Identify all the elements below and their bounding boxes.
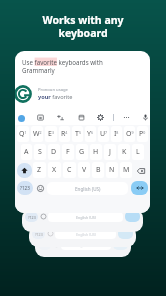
staticText: C xyxy=(67,165,72,175)
button[interactable]: More options xyxy=(121,112,132,123)
button[interactable]: K xyxy=(118,144,130,160)
staticText: J xyxy=(109,147,111,157)
staticText: K xyxy=(122,147,127,157)
button[interactable]: U7 xyxy=(98,126,109,142)
button[interactable]: F xyxy=(62,144,74,160)
staticText: W2 xyxy=(33,129,42,139)
staticText: English (US) xyxy=(76,215,96,220)
button[interactable]: R4 xyxy=(59,126,70,142)
staticText: A xyxy=(24,147,29,157)
button[interactable]: H xyxy=(90,144,102,160)
button[interactable]: Pronoun usage xyxy=(22,84,96,104)
staticText: Z xyxy=(37,165,42,175)
staticText: E3 xyxy=(48,129,54,139)
button[interactable]: S xyxy=(34,144,46,160)
staticText: Pronoun usage xyxy=(38,87,68,93)
staticText: M xyxy=(123,165,130,175)
staticText: English (US) xyxy=(76,232,96,237)
button[interactable]: X xyxy=(48,162,61,178)
staticText: I8 xyxy=(114,129,119,139)
button[interactable]: W2 xyxy=(31,126,43,142)
button[interactable]: O9 xyxy=(124,126,135,142)
button[interactable]: Sticker xyxy=(76,112,87,123)
staticText: F xyxy=(66,147,70,157)
button[interactable]: V xyxy=(78,162,90,178)
staticText: N xyxy=(109,165,115,175)
staticText: ?123 xyxy=(35,232,43,237)
staticText: H xyxy=(93,147,99,157)
staticText: Q1 xyxy=(19,129,27,139)
button[interactable]: Enter xyxy=(131,181,148,195)
button[interactable]: Y6 xyxy=(85,126,96,142)
staticText: G xyxy=(79,147,85,157)
staticText: Works with any keyboard xyxy=(0,13,166,40)
button[interactable]: G xyxy=(76,144,88,160)
button[interactable]: Emoji xyxy=(33,179,47,197)
button[interactable]: I8 xyxy=(111,126,122,142)
button[interactable]: Clipboard xyxy=(35,112,46,123)
staticText: X xyxy=(52,165,57,175)
staticText: Use favorite keyboards with xyxy=(22,58,103,66)
staticText: S xyxy=(38,147,42,157)
staticText: U7 xyxy=(100,129,108,139)
button[interactable]: L xyxy=(132,144,144,160)
staticText: English (US) xyxy=(75,186,101,192)
staticText: Y6 xyxy=(87,129,94,139)
staticText: P0 xyxy=(139,129,146,139)
staticText: D xyxy=(51,147,57,157)
staticText: B xyxy=(96,165,101,175)
button[interactable]: Q1 xyxy=(17,126,29,142)
button[interactable]: D xyxy=(48,144,60,160)
staticText: Grammarly xyxy=(22,66,55,74)
staticText: V xyxy=(82,165,87,175)
button[interactable]: Translate xyxy=(55,112,66,123)
button[interactable]: English (US) xyxy=(47,182,128,195)
button[interactable]: Google Assistant xyxy=(16,113,26,123)
button[interactable]: Shift xyxy=(17,163,32,178)
button[interactable]: A xyxy=(21,144,32,160)
button[interactable]: Backspace xyxy=(133,163,148,178)
staticText: L xyxy=(136,147,140,157)
button[interactable]: B xyxy=(92,162,104,178)
button[interactable]: Settings xyxy=(95,112,106,123)
staticText: your favorite xyxy=(38,93,73,101)
button[interactable]: J xyxy=(104,144,116,160)
staticText: T5 xyxy=(75,129,81,139)
staticText: O9 xyxy=(126,129,134,139)
staticText: R4 xyxy=(61,129,68,139)
staticText: ?123 xyxy=(20,185,30,191)
button[interactable]: T5 xyxy=(72,126,83,142)
button[interactable]: ?123 xyxy=(17,181,33,195)
button[interactable]: Voice input xyxy=(140,112,150,123)
button[interactable]: P0 xyxy=(137,126,148,142)
button[interactable]: Z xyxy=(33,162,46,178)
button[interactable]: C xyxy=(63,162,76,178)
staticText: English (US) xyxy=(76,243,96,248)
button[interactable]: N xyxy=(106,162,118,178)
staticText: ?123 xyxy=(28,215,36,220)
button[interactable]: M xyxy=(120,162,132,178)
button[interactable]: E3 xyxy=(45,126,57,142)
